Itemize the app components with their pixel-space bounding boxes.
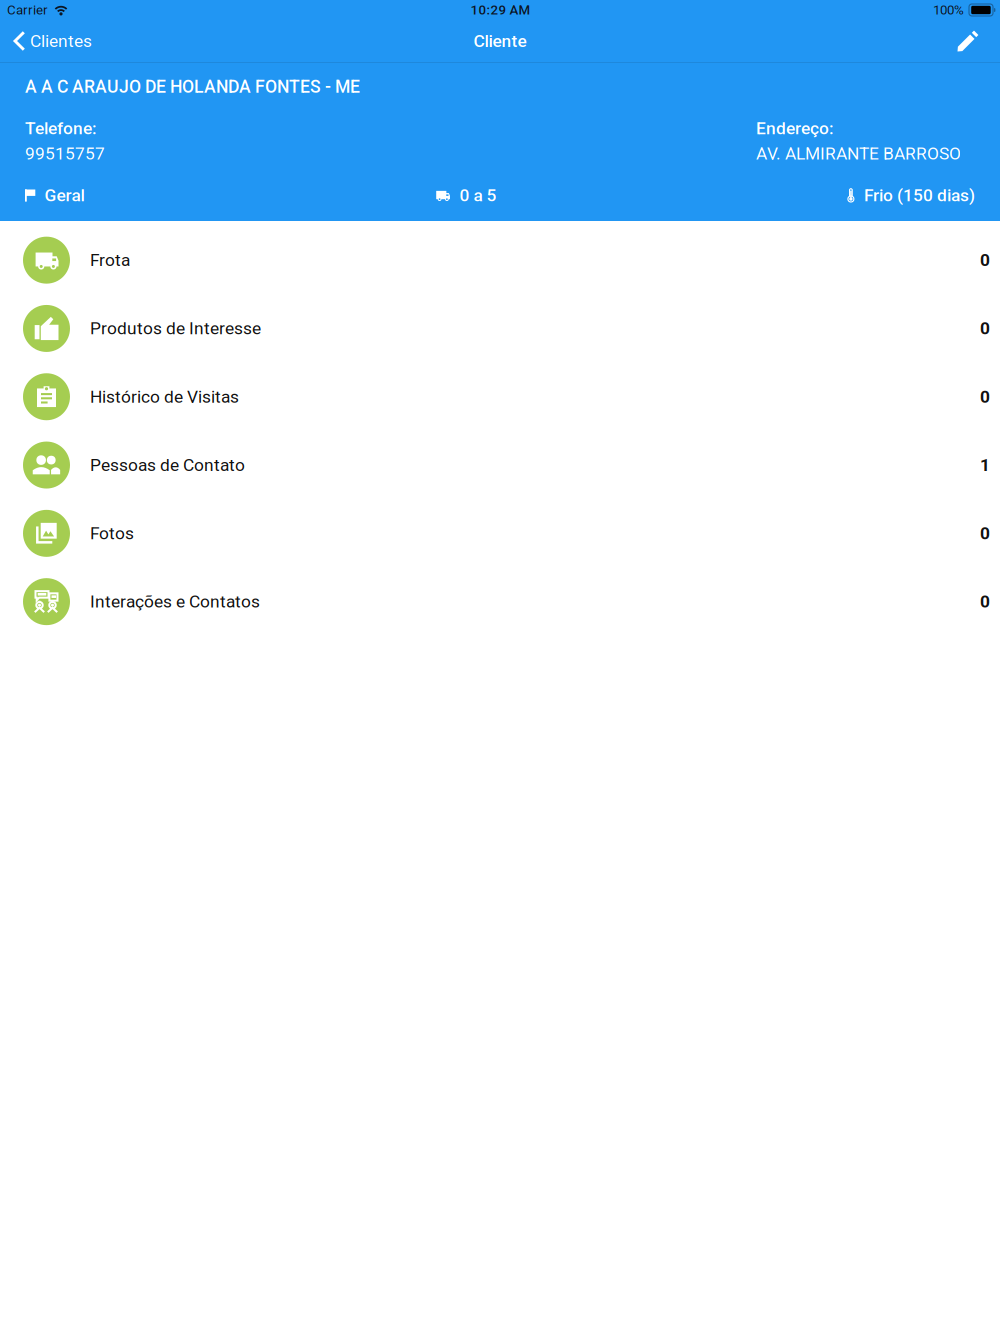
staticText: Endereço: bbox=[756, 118, 834, 138]
button[interactable]: Frota bbox=[0, 226, 1000, 294]
button[interactable]: Pessoas de Contato bbox=[0, 431, 1000, 499]
staticText: Frio (150 dias) bbox=[864, 185, 975, 205]
button[interactable]: Fotos bbox=[0, 499, 1000, 567]
button[interactable]: Produtos de Interesse bbox=[0, 294, 1000, 363]
staticText: 99515757 bbox=[25, 143, 105, 164]
staticText: Cliente bbox=[473, 31, 526, 51]
staticText: A A C ARAUJO DE HOLANDA FONTES - ME bbox=[25, 76, 360, 97]
button[interactable]: Interações e Contatos bbox=[0, 567, 1000, 636]
staticText: AV. ALMIRANTE BARROSO bbox=[756, 143, 961, 164]
staticText: 0 bbox=[980, 250, 990, 270]
button[interactable]: Clientes bbox=[0, 20, 102, 62]
button[interactable]: Editar bbox=[946, 20, 990, 62]
staticText: Fotos bbox=[90, 523, 134, 543]
staticText: 0 bbox=[980, 591, 990, 612]
staticText: Produtos de Interesse bbox=[90, 318, 261, 339]
staticText: 0 bbox=[980, 387, 990, 407]
staticText: Frota bbox=[90, 250, 130, 270]
staticText: 0 a 5 bbox=[460, 185, 497, 205]
staticText: 1 bbox=[980, 455, 990, 475]
button[interactable]: Histórico de Visitas bbox=[0, 363, 1000, 431]
staticText: Geral bbox=[44, 185, 84, 205]
staticText: 0 bbox=[980, 318, 990, 339]
staticText: Histórico de Visitas bbox=[90, 387, 239, 407]
staticText: Carrier bbox=[7, 2, 48, 18]
staticText: Pessoas de Contato bbox=[90, 455, 245, 475]
staticText: 100% bbox=[933, 2, 964, 18]
staticText: Interações e Contatos bbox=[90, 591, 260, 612]
staticText: Clientes bbox=[30, 31, 92, 51]
staticText: 10:29 AM bbox=[470, 2, 530, 18]
staticText: 0 bbox=[980, 523, 990, 543]
staticText: Telefone: bbox=[25, 118, 97, 138]
